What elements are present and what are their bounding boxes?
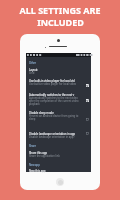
staticText: Disable sleep mode bbox=[29, 111, 82, 115]
button[interactable]: New this app bbox=[26, 169, 91, 173]
staticText: Prevent an Android device from going to … bbox=[29, 114, 82, 120]
staticText: New app bbox=[29, 163, 82, 167]
staticText: Disable landscape orientation in app bbox=[29, 132, 82, 136]
button[interactable]: Toggle option bbox=[85, 131, 90, 136]
staticText: Automatically switches to the next video… bbox=[29, 96, 82, 105]
button[interactable]: Automatically switches to the next v bbox=[26, 93, 91, 102]
button[interactable]: Toggle option bbox=[85, 117, 90, 122]
staticText: Share bbox=[29, 144, 82, 148]
staticText: Other bbox=[29, 61, 82, 65]
staticText: Grid bbox=[29, 71, 82, 75]
button[interactable]: Use built-in video player for local vid bbox=[26, 79, 91, 83]
button[interactable]: Home bbox=[56, 178, 64, 186]
button[interactable]: Share this app bbox=[26, 151, 91, 155]
staticText: Share the application link bbox=[29, 154, 82, 158]
button[interactable]: Disable landscape orientation in app bbox=[26, 132, 91, 136]
staticText: INCLUDED bbox=[37, 16, 84, 28]
staticText: Layout bbox=[29, 68, 82, 72]
staticText: ALL SETTINGS ARE bbox=[19, 4, 101, 16]
button[interactable]: Toggle option bbox=[85, 98, 90, 103]
staticText: Automatically switches to the next v bbox=[29, 93, 82, 97]
staticText: Use built-in video player for local vid bbox=[29, 79, 82, 83]
button[interactable]: Disable sleep mode bbox=[26, 111, 91, 117]
staticText: New this app bbox=[29, 169, 82, 173]
button[interactable]: Toggle option bbox=[85, 83, 90, 88]
button[interactable]: Layout bbox=[26, 68, 91, 72]
staticText: Disable landscape orientation in app? bbox=[29, 135, 82, 139]
staticText: Share this app bbox=[29, 151, 82, 155]
staticText: Use built-in video player for local vide… bbox=[29, 82, 82, 86]
